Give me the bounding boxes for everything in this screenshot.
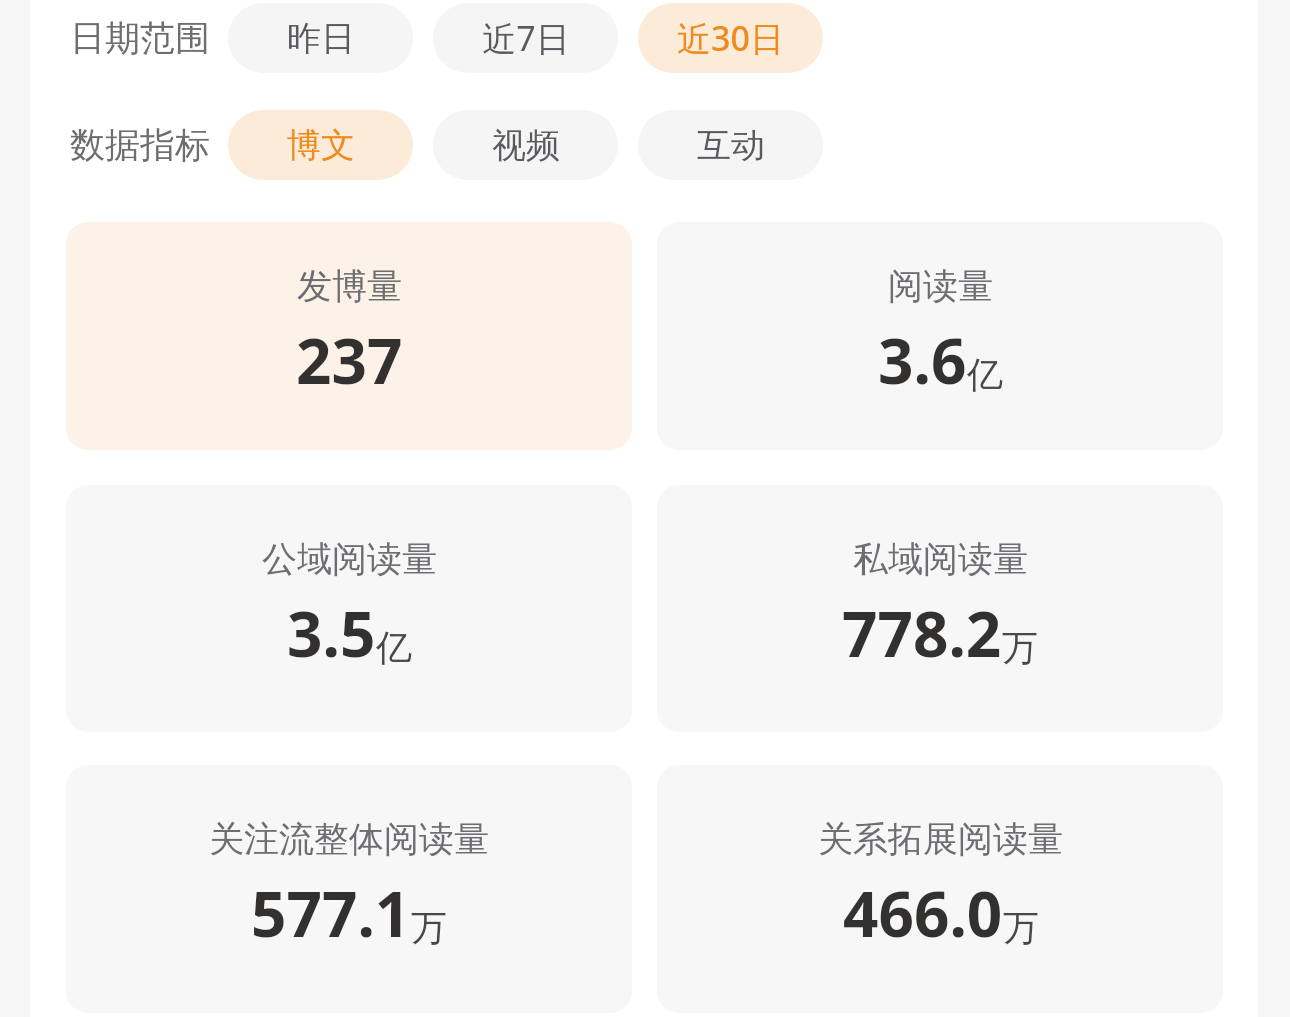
button[interactable]: 关系拓展阅读量: [657, 765, 1223, 1013]
button[interactable]: 近7日: [433, 3, 618, 73]
staticText: 互动: [697, 124, 765, 167]
staticText: 博文: [287, 124, 355, 167]
staticText: 近30日: [677, 15, 784, 61]
button[interactable]: 私域阅读量: [657, 485, 1223, 732]
button[interactable]: 阅读量: [657, 222, 1223, 450]
staticText: 万: [411, 905, 447, 950]
button[interactable]: 互动: [638, 110, 823, 180]
staticText: 昨日: [287, 17, 355, 60]
staticText: 视频: [492, 124, 560, 167]
button[interactable]: 关注流整体阅读量: [66, 765, 632, 1013]
staticText: 私域阅读量: [853, 537, 1028, 581]
button[interactable]: 发博量: [66, 222, 632, 450]
staticText: 关注流整体阅读量: [209, 817, 489, 861]
staticText: 近7日: [482, 15, 570, 61]
button[interactable]: 公域阅读量: [66, 485, 632, 732]
button[interactable]: 博文: [228, 110, 413, 180]
button[interactable]: 视频: [433, 110, 618, 180]
staticText: 数据指标: [70, 123, 210, 167]
staticText: 万: [1002, 625, 1038, 670]
staticText: 万: [1003, 905, 1039, 950]
staticText: 关系拓展阅读量: [818, 817, 1063, 861]
staticText: 577.1: [251, 871, 411, 955]
staticText: 发博量: [297, 264, 402, 308]
staticText: 3.5: [287, 591, 376, 675]
staticText: 日期范围: [70, 16, 210, 60]
button[interactable]: 昨日: [228, 3, 413, 73]
staticText: 778.2: [842, 591, 1002, 675]
staticText: 亿: [967, 352, 1003, 397]
staticText: 466.0: [843, 871, 1003, 955]
staticText: 3.6: [878, 318, 967, 402]
button[interactable]: 近30日: [638, 3, 823, 73]
staticText: 237: [296, 318, 403, 402]
staticText: 亿: [376, 625, 412, 670]
staticText: 阅读量: [888, 264, 993, 308]
staticText: 公域阅读量: [262, 537, 437, 581]
